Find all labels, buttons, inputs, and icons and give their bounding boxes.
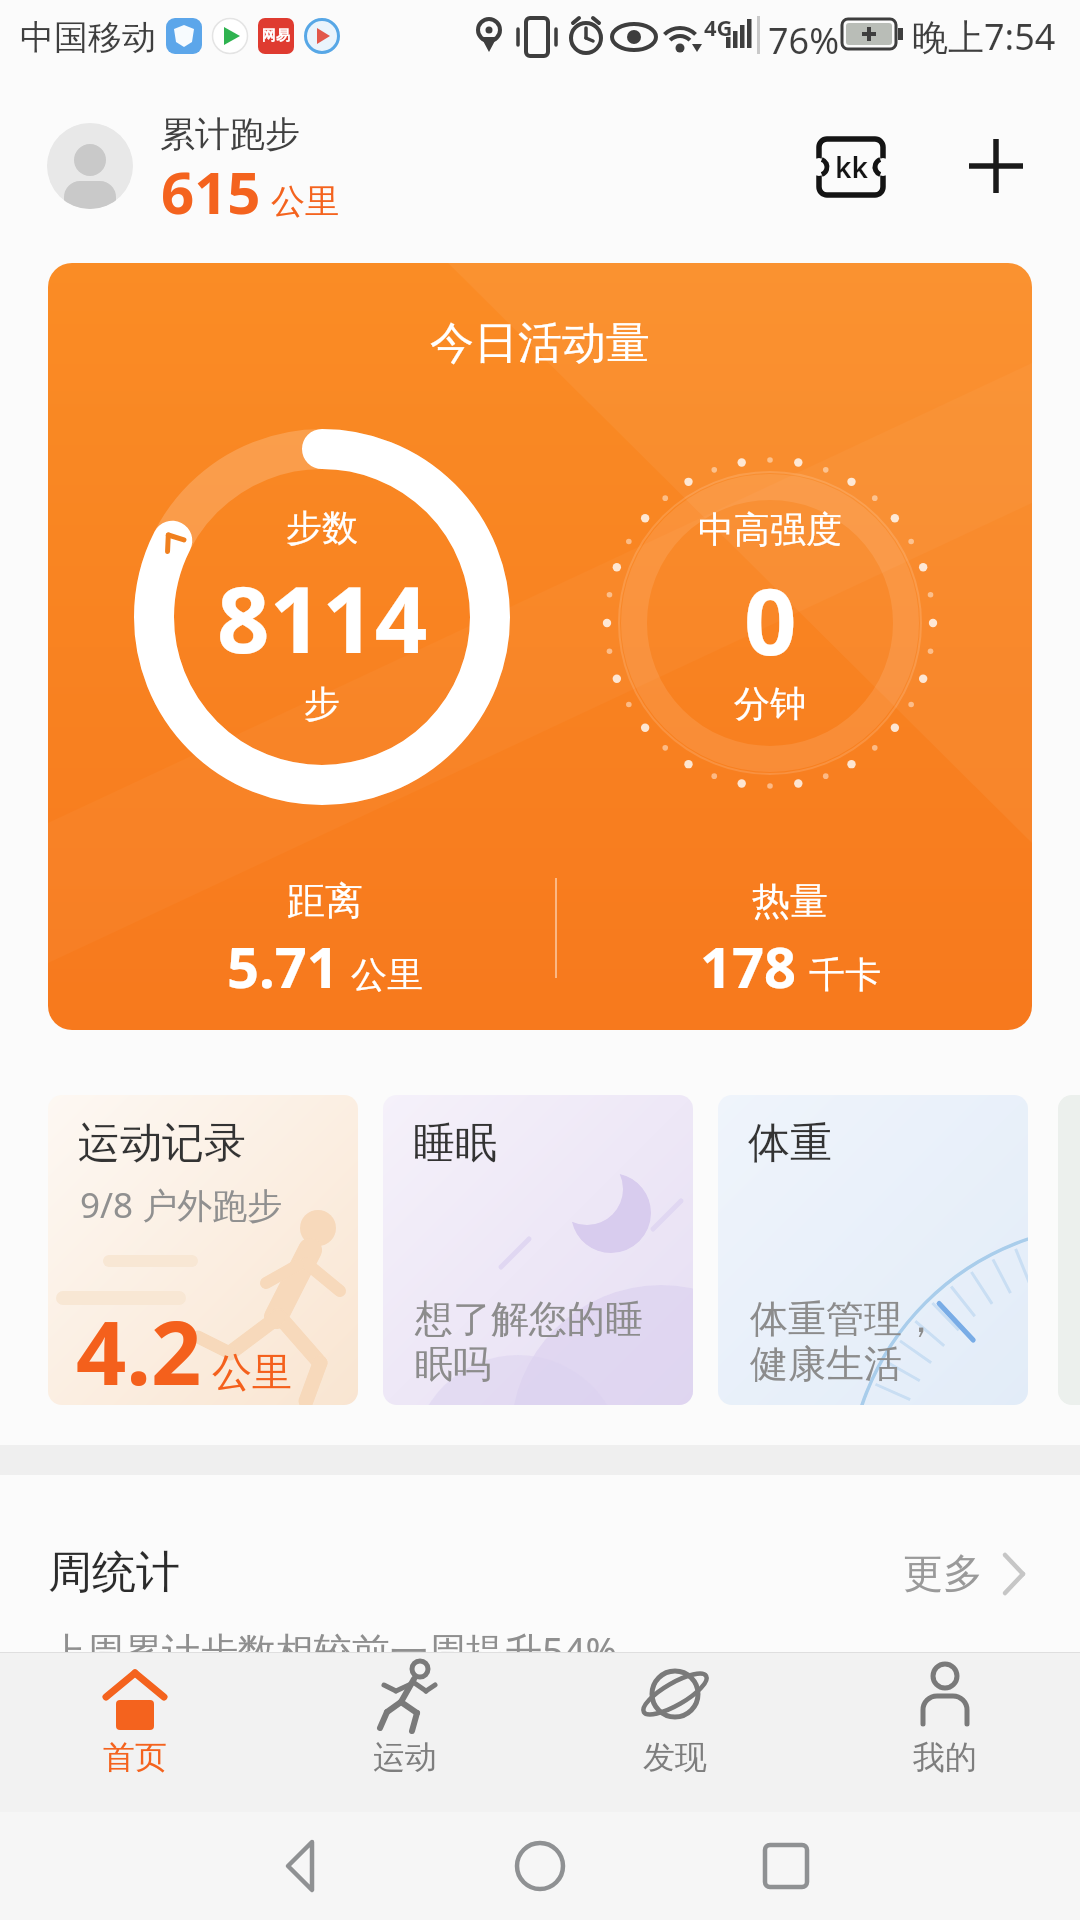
staticText: 体重管理，健康生活 (750, 1295, 962, 1389)
staticText: 体重 (748, 1117, 832, 1170)
staticText: 首页 (103, 1737, 167, 1777)
staticText: 想了解您的睡眠吗 (415, 1295, 665, 1389)
button[interactable] (754, 1834, 818, 1898)
staticText: 公里 (271, 180, 339, 223)
button[interactable] (47, 123, 133, 209)
button[interactable] (270, 1834, 334, 1898)
button[interactable]: 运动记录 (48, 1095, 358, 1405)
staticText: 运动记录 (78, 1117, 246, 1170)
button[interactable]: 首页 (45, 1652, 225, 1812)
staticText: 8114 (217, 555, 428, 680)
staticText: 网易 (262, 27, 290, 45)
staticText: 76% (768, 16, 840, 65)
staticText: 中高强度 (698, 507, 842, 552)
staticText: 9/8 户外跑步 (80, 1181, 283, 1229)
staticText: 615 (161, 152, 261, 231)
staticText: 公里 (351, 952, 423, 997)
staticText: 178 (700, 928, 797, 1004)
staticText: 千卡 (809, 952, 881, 997)
button[interactable]: kk (816, 136, 886, 198)
button[interactable]: 我的 (855, 1652, 1035, 1812)
button[interactable]: 今日活动量 (48, 263, 1032, 1030)
button[interactable]: 更多 (890, 1540, 1050, 1600)
staticText: 上周累计步数相较前一周提升54% (48, 1624, 618, 1676)
staticText: 距离 (287, 877, 363, 925)
staticText: 公里 (212, 1347, 292, 1397)
staticText: 更多 (903, 1548, 983, 1598)
staticText: 热量 (752, 877, 828, 925)
button[interactable]: 睡眠 (383, 1095, 693, 1405)
staticText: 睡眠 (413, 1117, 497, 1170)
staticText: 4.2 (76, 1291, 202, 1405)
staticText: 我的 (913, 1737, 977, 1777)
staticText: 5.71 (227, 928, 339, 1004)
button[interactable]: 运动 (315, 1652, 495, 1812)
staticText: 周统计 (48, 1545, 180, 1600)
button[interactable]: 发现 (585, 1652, 765, 1812)
staticText: 运动 (373, 1737, 437, 1777)
staticText: 分钟 (734, 681, 806, 726)
staticText: 中国移动 (20, 16, 156, 59)
staticText: 步 (304, 681, 340, 726)
staticText: 步数 (286, 505, 358, 550)
button[interactable] (508, 1834, 572, 1898)
staticText: 晚上7:54 (912, 12, 1056, 61)
staticText: 4G (704, 12, 733, 42)
staticText: 发现 (643, 1737, 707, 1777)
staticText: 累计跑步 (160, 112, 300, 156)
button[interactable]: 体重 (718, 1095, 1028, 1405)
staticText: kk (835, 148, 868, 186)
button[interactable] (962, 132, 1030, 200)
staticText: 今日活动量 (430, 316, 650, 371)
staticText: 0 (744, 557, 797, 682)
